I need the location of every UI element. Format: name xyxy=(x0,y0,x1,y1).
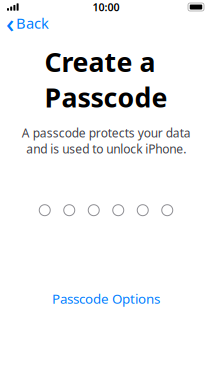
staticText: 10:00 xyxy=(92,0,119,14)
staticText: Passcode Options xyxy=(52,290,160,307)
staticText: Create a Passcode xyxy=(44,44,167,115)
staticText: Back xyxy=(16,13,49,33)
staticText: ‹ xyxy=(6,6,14,40)
button[interactable]: ‹ xyxy=(0,3,49,43)
staticText: A passcode protects your data and is use… xyxy=(21,125,190,157)
button[interactable]: Passcode Options xyxy=(42,284,170,313)
